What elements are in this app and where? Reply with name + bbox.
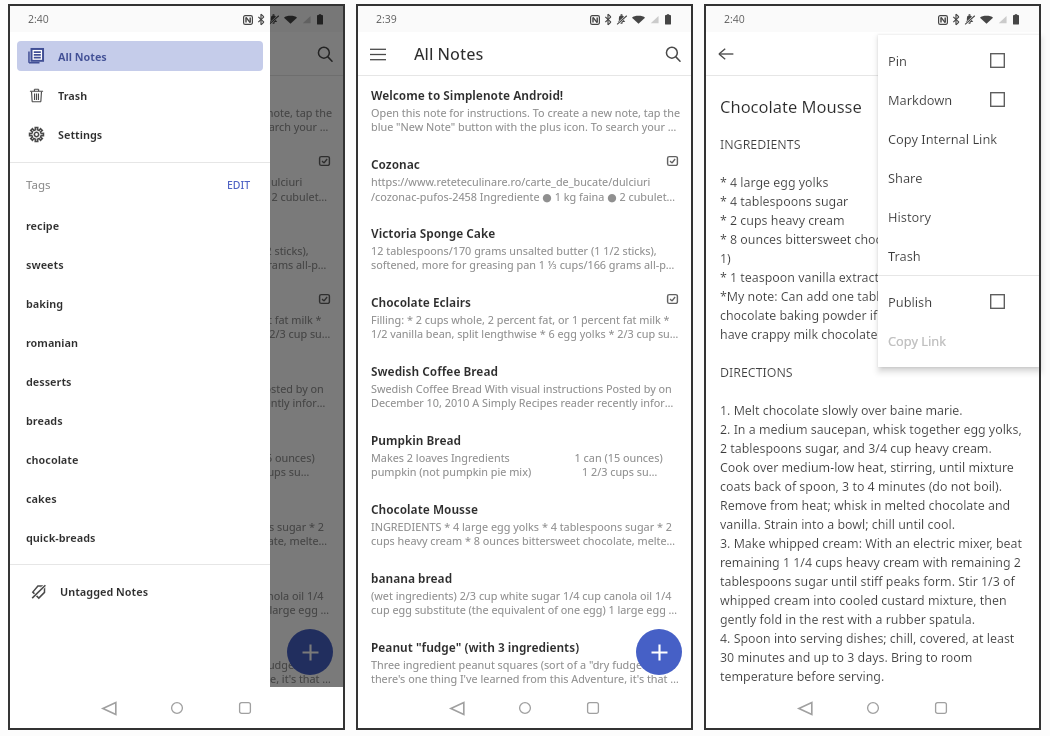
button[interactable]: Trash: [878, 236, 1040, 275]
button[interactable]: Cozonac: [358, 145, 691, 214]
staticText: sweets: [26, 257, 64, 272]
button[interactable]: banana bread: [358, 559, 691, 628]
staticText: romanian: [26, 335, 79, 350]
staticText: https://www.reteteculinare.ro/carte_de_b…: [23, 174, 333, 204]
button[interactable]: Peanut "fudge" (with 3 ingredients): [358, 628, 691, 687]
staticText: Peanut "fudge" (with 3 ingredients): [23, 639, 308, 655]
button[interactable]: chocolate: [10, 440, 270, 479]
staticText: 12 tablespoons/170 grams unsalted butter…: [371, 243, 681, 273]
staticText: Victoria Sponge Cake: [23, 225, 308, 241]
staticText: 2:40: [724, 12, 745, 26]
button[interactable]: Share: [878, 158, 1040, 197]
staticText: All Notes: [414, 43, 484, 65]
button[interactable]: Chocolate Eclairs: [358, 283, 691, 352]
button[interactable]: Welcome to Simplenote Android!: [10, 76, 343, 145]
staticText: Makes 2 loaves Ingredients 1 can (15 oun…: [23, 450, 315, 480]
button[interactable]: All Notes: [17, 41, 263, 71]
staticText: baking: [26, 296, 64, 311]
button[interactable]: Home: [162, 693, 192, 723]
button[interactable]: sweets: [10, 245, 270, 284]
staticText: desserts: [26, 374, 72, 389]
staticText: Open this note for instructions. To crea…: [371, 105, 681, 135]
button[interactable]: recipe: [10, 206, 270, 245]
staticText: Chocolate Eclairs: [23, 294, 308, 310]
staticText: quick-breads: [26, 530, 96, 545]
button[interactable]: cakes: [10, 479, 270, 518]
button[interactable]: Swedish Coffee Bread: [358, 352, 691, 421]
button[interactable]: Victoria Sponge Cake: [10, 214, 343, 283]
button[interactable]: breads: [10, 401, 270, 440]
button[interactable]: quick-breads: [10, 518, 270, 557]
staticText: INGREDIENTS * 4 large egg yolks * 4 tabl…: [371, 519, 681, 549]
button[interactable]: Untagged Notes: [10, 574, 270, 608]
staticText: Three ingredient peanut squares (sort of…: [371, 657, 681, 687]
button[interactable]: Settings: [17, 119, 263, 149]
button[interactable]: History: [878, 197, 1040, 236]
staticText: 2:39: [376, 12, 397, 26]
staticText: Swedish Coffee Bread: [371, 363, 656, 379]
staticText: Open this note for instructions. To crea…: [23, 105, 333, 135]
staticText: 2:40: [28, 12, 49, 26]
button[interactable]: EDIT: [222, 174, 256, 196]
button[interactable]: Swedish Coffee Bread: [10, 352, 343, 421]
staticText: breads: [26, 413, 63, 428]
staticText: Untagged Notes: [60, 584, 149, 599]
staticText: Pin: [888, 52, 907, 69]
button[interactable]: Markdown: [878, 80, 1040, 119]
staticText: Cozonac: [23, 156, 308, 172]
button[interactable]: Victoria Sponge Cake: [358, 214, 691, 283]
staticText: cakes: [26, 491, 57, 506]
button[interactable]: Search: [659, 40, 687, 68]
staticText: Three ingredient peanut squares (sort of…: [23, 657, 333, 687]
staticText: EDIT: [227, 178, 251, 192]
button[interactable]: Search: [311, 40, 339, 68]
button[interactable]: Back: [94, 693, 124, 723]
staticText: INGREDIENTS * 4 large egg yolks * 4 tabl…: [720, 136, 1023, 684]
staticText: chocolate: [26, 452, 79, 467]
button[interactable]: Cozonac: [10, 145, 343, 214]
button[interactable]: Recents: [926, 693, 956, 723]
button[interactable]: New Note: [287, 629, 333, 675]
button[interactable]: Pin: [878, 41, 1040, 80]
staticText: Swedish Coffee Bread: [23, 363, 308, 379]
staticText: Trash: [58, 88, 88, 103]
button[interactable]: desserts: [10, 362, 270, 401]
staticText: History: [888, 208, 932, 225]
button[interactable]: romanian: [10, 323, 270, 362]
button[interactable]: Chocolate Mousse: [10, 490, 343, 559]
button[interactable]: Back: [790, 693, 820, 723]
button[interactable]: Open navigation drawer: [364, 40, 392, 68]
staticText: Share: [888, 169, 923, 186]
staticText: Welcome to Simplenote Android!: [23, 87, 308, 103]
button[interactable]: Home: [510, 693, 540, 723]
staticText: Chocolate Mousse: [720, 95, 862, 117]
staticText: Tags: [26, 177, 51, 193]
button[interactable]: banana bread: [10, 559, 343, 628]
button[interactable]: New Note: [636, 629, 682, 675]
button[interactable]: baking: [10, 284, 270, 323]
staticText: Publish: [888, 293, 933, 310]
staticText: Welcome to Simplenote Android!: [371, 87, 656, 103]
staticText: Makes 2 loaves Ingredients 1 can (15 oun…: [371, 450, 663, 480]
button[interactable]: Pumpkin Bread: [358, 421, 691, 490]
button[interactable]: Back: [442, 693, 472, 723]
button[interactable]: Copy Link: [878, 321, 1040, 360]
button[interactable]: Trash: [17, 80, 263, 110]
button[interactable]: Peanut "fudge" (with 3 ingredients): [10, 628, 343, 687]
button[interactable]: Chocolate Mousse: [358, 490, 691, 559]
staticText: (wet ingredients) 2/3 cup white sugar 1/…: [23, 588, 333, 618]
button[interactable]: Back: [712, 40, 740, 68]
staticText: Pumpkin Bread: [371, 432, 656, 448]
button[interactable]: Chocolate Eclairs: [10, 283, 343, 352]
button[interactable]: Home: [858, 693, 888, 723]
staticText: Chocolate Eclairs: [371, 294, 656, 310]
button[interactable]: Publish: [878, 282, 1040, 321]
button[interactable]: Copy Internal Link: [878, 119, 1040, 158]
button[interactable]: Pumpkin Bread: [10, 421, 343, 490]
staticText: https://www.reteteculinare.ro/carte_de_b…: [371, 174, 681, 204]
staticText: INGREDIENTS * 4 large egg yolks * 4 tabl…: [23, 519, 333, 549]
button[interactable]: Recents: [230, 693, 260, 723]
staticText: Chocolate Mousse: [23, 501, 308, 517]
button[interactable]: Welcome to Simplenote Android!: [358, 76, 691, 145]
button[interactable]: Recents: [578, 693, 608, 723]
